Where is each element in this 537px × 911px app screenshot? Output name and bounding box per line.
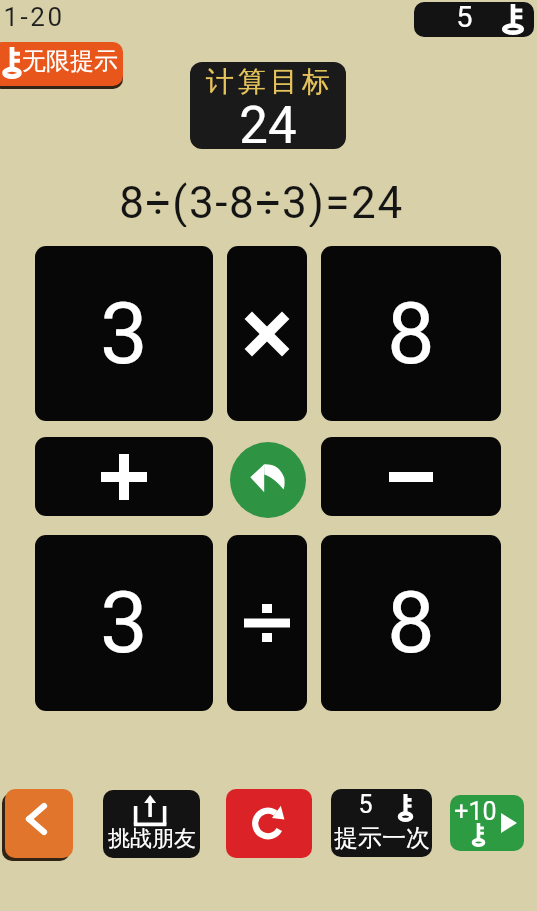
staticText: 3 [100, 284, 148, 384]
button[interactable] [5, 789, 73, 858]
staticText: 1-20 [3, 2, 65, 32]
button[interactable] [321, 437, 501, 516]
staticText: 挑战朋友 [108, 825, 196, 853]
staticText: 计算目标 [204, 64, 332, 99]
button[interactable] [35, 437, 213, 516]
staticText: 5 [358, 790, 373, 819]
button[interactable]: 3 [35, 246, 213, 421]
button[interactable]: 无限提示 [0, 42, 123, 86]
button[interactable] [230, 442, 306, 518]
button[interactable]: 8 [321, 246, 501, 421]
button[interactable]: 挑战朋友 [103, 790, 200, 858]
button[interactable] [227, 246, 307, 421]
staticText: 无限提示 [22, 46, 118, 76]
button[interactable]: +10 [450, 795, 524, 851]
button[interactable] [227, 535, 307, 711]
staticText: 8÷(3-8÷3)=24 [119, 177, 404, 227]
staticText: 5 [456, 2, 473, 34]
staticText: 8 [387, 573, 435, 673]
button[interactable] [226, 789, 312, 858]
staticText: 3 [100, 573, 148, 673]
staticText: 提示一次 [334, 823, 430, 852]
button[interactable]: 5 [331, 789, 432, 857]
staticText: 24 [239, 96, 297, 144]
staticText: +10 [454, 797, 497, 821]
button[interactable]: 3 [35, 535, 213, 711]
button[interactable]: 8 [321, 535, 501, 711]
staticText: 8 [387, 284, 435, 384]
